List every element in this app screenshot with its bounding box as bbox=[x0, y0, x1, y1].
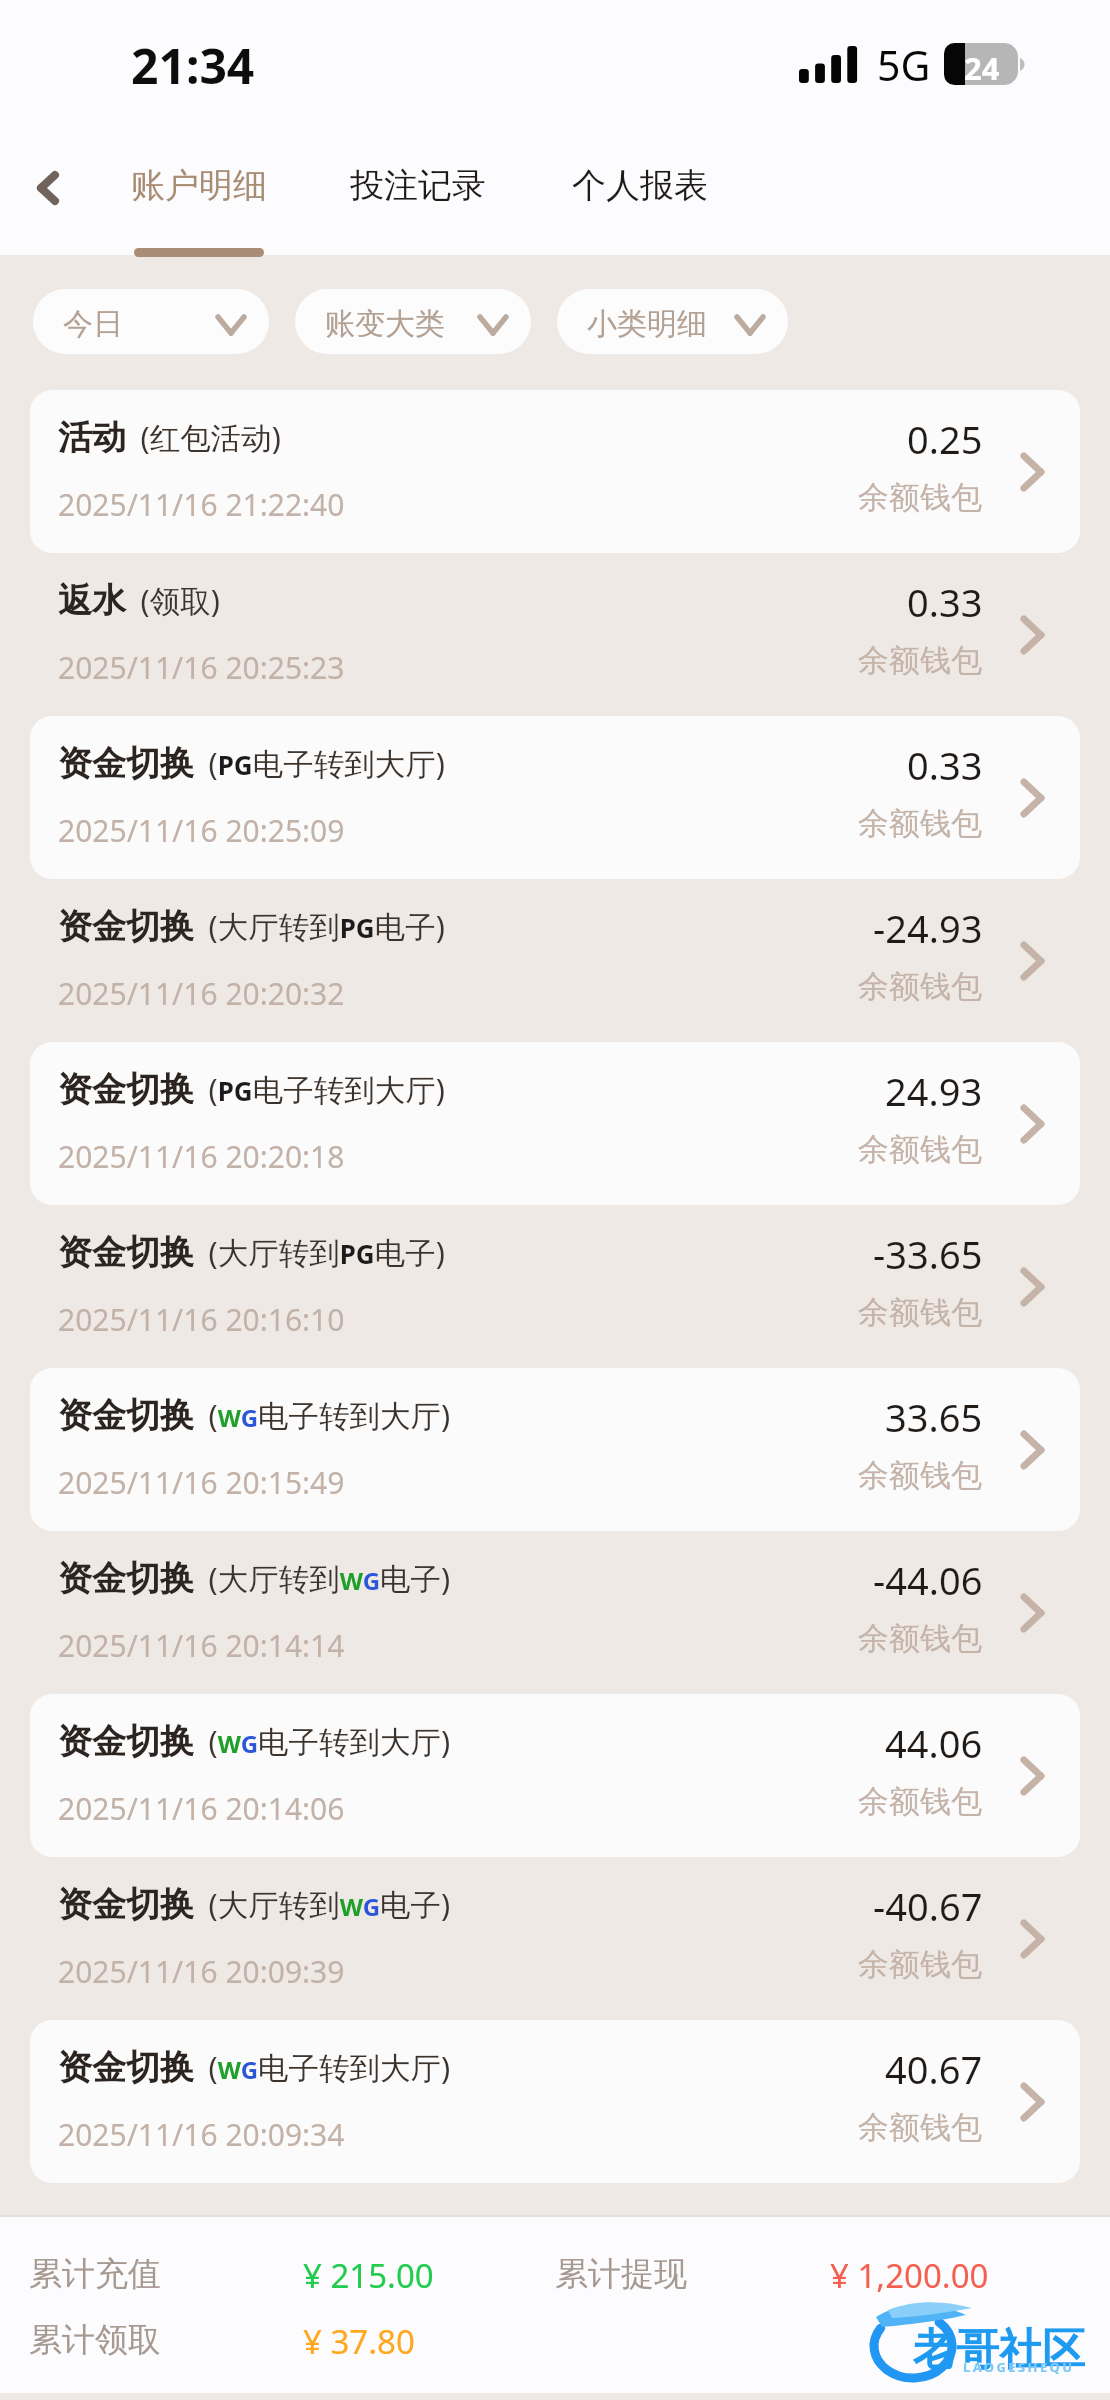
staticText: 资金切换 (WG电子转到大厅) bbox=[58, 2046, 451, 2089]
staticText: 累计提现 bbox=[555, 2253, 687, 2295]
staticText: ¥ 1,200.00 bbox=[830, 2253, 989, 2298]
button[interactable]: Back bbox=[6, 150, 82, 226]
staticText: 0.33 bbox=[907, 739, 983, 791]
staticText: -44.06 bbox=[873, 1554, 983, 1606]
staticText: 余额钱包 bbox=[858, 1945, 982, 1984]
staticText: 余额钱包 bbox=[858, 967, 982, 1006]
staticText: 余额钱包 bbox=[858, 1456, 982, 1495]
staticText: 小类明细 bbox=[587, 305, 707, 343]
button[interactable]: 账变大类 bbox=[295, 289, 531, 354]
button[interactable]: 返水 (领取) bbox=[30, 553, 1080, 716]
staticText: 资金切换 (WG电子转到大厅) bbox=[58, 1394, 451, 1437]
staticText: 33.65 bbox=[885, 1391, 983, 1443]
staticText: 2025/11/16 21:22:40 bbox=[58, 484, 345, 525]
button[interactable]: 资金切换 (大厅转到WG电子) bbox=[30, 1531, 1080, 1694]
staticText: LAOGESHEQU bbox=[963, 2358, 1075, 2376]
button[interactable]: 今日 bbox=[33, 289, 269, 354]
button[interactable]: 小类明细 bbox=[557, 289, 788, 354]
staticText: 余额钱包 bbox=[858, 2108, 982, 2147]
button[interactable]: 资金切换 (WG电子转到大厅) bbox=[30, 1694, 1080, 1857]
staticText: -24.93 bbox=[873, 902, 983, 954]
staticText: 账户明细 bbox=[131, 164, 267, 207]
button[interactable]: 资金切换 (WG电子转到大厅) bbox=[30, 1368, 1080, 1531]
staticText: 21:34 bbox=[131, 33, 255, 98]
staticText: 2025/11/16 20:09:39 bbox=[58, 1951, 345, 1992]
staticText: 0.25 bbox=[907, 413, 983, 465]
staticText: 个人报表 bbox=[572, 164, 708, 207]
staticText: 余额钱包 bbox=[858, 641, 982, 680]
staticText: 2025/11/16 20:14:14 bbox=[58, 1625, 345, 1666]
staticText: 投注记录 bbox=[350, 164, 486, 207]
button[interactable]: 个人报表 bbox=[557, 145, 723, 265]
button[interactable]: 活动 (红包活动) bbox=[30, 390, 1080, 553]
staticText: 2025/11/16 20:09:34 bbox=[58, 2114, 345, 2155]
staticText: 返水 (领取) bbox=[58, 579, 220, 622]
staticText: 24 bbox=[964, 47, 1000, 89]
staticText: 余额钱包 bbox=[858, 1293, 982, 1332]
staticText: 资金切换 (PG电子转到大厅) bbox=[58, 742, 445, 785]
staticText: 今日 bbox=[63, 305, 123, 343]
staticText: ¥ 215.00 bbox=[303, 2253, 434, 2298]
staticText: 余额钱包 bbox=[858, 478, 982, 517]
staticText: 资金切换 (PG电子转到大厅) bbox=[58, 1068, 445, 1111]
staticText: 资金切换 (大厅转到PG电子) bbox=[58, 1231, 445, 1274]
staticText: 资金切换 (大厅转到WG电子) bbox=[58, 1883, 451, 1926]
staticText: 资金切换 (大厅转到PG电子) bbox=[58, 905, 445, 948]
staticText: 2025/11/16 20:14:06 bbox=[58, 1788, 345, 1829]
staticText: 2025/11/16 20:15:49 bbox=[58, 1462, 345, 1503]
staticText: 活动 (红包活动) bbox=[58, 416, 281, 459]
button[interactable]: 资金切换 (大厅转到PG电子) bbox=[30, 879, 1080, 1042]
staticText: 44.06 bbox=[885, 1717, 983, 1769]
staticText: 账变大类 bbox=[325, 305, 445, 343]
button[interactable]: 资金切换 (大厅转到WG电子) bbox=[30, 1857, 1080, 2020]
staticText: 资金切换 (WG电子转到大厅) bbox=[58, 1720, 451, 1763]
staticText: 2025/11/16 20:25:23 bbox=[58, 647, 345, 688]
staticText: 资金切换 (大厅转到WG电子) bbox=[58, 1557, 451, 1600]
staticText: 累计领取 bbox=[29, 2319, 161, 2361]
staticText: 余额钱包 bbox=[858, 1130, 982, 1169]
staticText: 老哥社区 bbox=[913, 2323, 1085, 2377]
button[interactable]: 资金切换 (WG电子转到大厅) bbox=[30, 2020, 1080, 2183]
button[interactable]: 资金切换 (PG电子转到大厅) bbox=[30, 716, 1080, 879]
staticText: 余额钱包 bbox=[858, 1782, 982, 1821]
staticText: 2025/11/16 20:20:18 bbox=[58, 1136, 345, 1177]
staticText: 24.93 bbox=[885, 1065, 983, 1117]
staticText: 2025/11/16 20:20:32 bbox=[58, 973, 345, 1014]
staticText: 40.67 bbox=[885, 2043, 983, 2095]
button[interactable]: 账户明细 bbox=[116, 145, 282, 265]
staticText: 累计充值 bbox=[29, 2253, 161, 2295]
button[interactable]: 投注记录 bbox=[335, 145, 501, 265]
staticText: 2025/11/16 20:16:10 bbox=[58, 1299, 345, 1340]
staticText: -33.65 bbox=[873, 1228, 983, 1280]
staticText: 余额钱包 bbox=[858, 804, 982, 843]
staticText: 余额钱包 bbox=[858, 1619, 982, 1658]
staticText: 5G bbox=[877, 37, 931, 93]
button[interactable]: 资金切换 (PG电子转到大厅) bbox=[30, 1042, 1080, 1205]
button[interactable]: 资金切换 (大厅转到PG电子) bbox=[30, 1205, 1080, 1368]
staticText: 0.33 bbox=[907, 576, 983, 628]
staticText: -40.67 bbox=[873, 1880, 983, 1932]
staticText: 2025/11/16 20:25:09 bbox=[58, 810, 345, 851]
staticText: ¥ 37.80 bbox=[303, 2319, 415, 2364]
